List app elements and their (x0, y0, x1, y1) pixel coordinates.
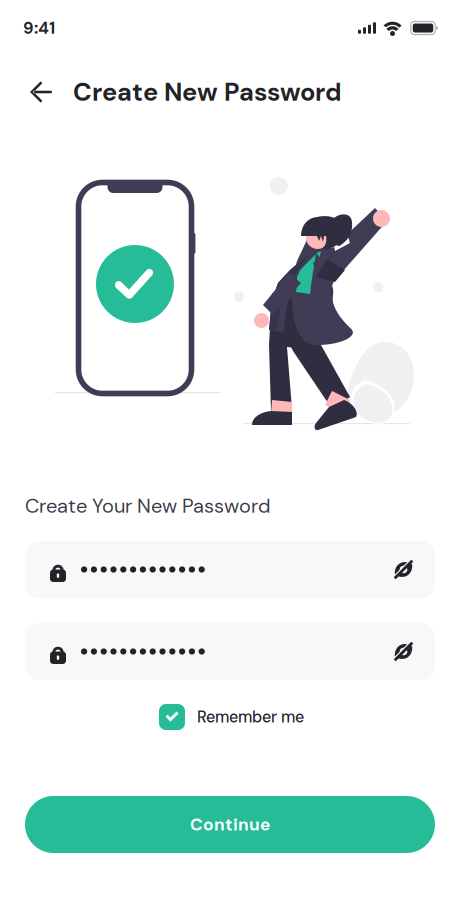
button[interactable]: Show password (373, 623, 435, 680)
button[interactable]: Remember me (147, 695, 316, 739)
button[interactable]: Show password (373, 541, 435, 598)
staticText: Continue (190, 813, 270, 836)
staticText: 9:41 (23, 17, 55, 39)
button[interactable]: Continue (25, 796, 435, 853)
button[interactable]: Back (0, 67, 73, 117)
staticText: Remember me (197, 707, 304, 727)
staticText: Create Your New Password (25, 493, 271, 519)
staticText: Create New Password (73, 75, 342, 108)
